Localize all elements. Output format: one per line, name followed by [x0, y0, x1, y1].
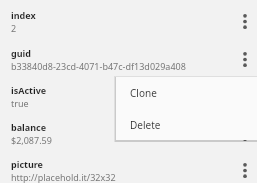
- staticText: b33840d8-23cd-4071-b47c-df13d029a408: [11, 60, 236, 72]
- staticText: Clone: [130, 86, 157, 100]
- staticText: index: [11, 9, 36, 21]
- button[interactable]: More options for index: [233, 9, 257, 33]
- staticText: $2,087.59: [11, 134, 236, 146]
- button[interactable]: Delete: [116, 109, 257, 140]
- button[interactable]: Clone: [116, 77, 257, 109]
- staticText: http://placehold.it/32x32: [11, 171, 236, 183]
- staticText: 2: [11, 22, 236, 34]
- staticText: balance: [11, 121, 47, 133]
- staticText: isActive: [11, 84, 47, 96]
- staticText: true: [11, 97, 236, 109]
- button[interactable]: More options for guid: [233, 47, 257, 71]
- button[interactable]: More options for picture: [233, 158, 257, 182]
- staticText: picture: [11, 158, 43, 170]
- button[interactable]: More options for balance: [233, 121, 257, 145]
- staticText: Delete: [130, 118, 161, 132]
- staticText: guid: [11, 47, 31, 59]
